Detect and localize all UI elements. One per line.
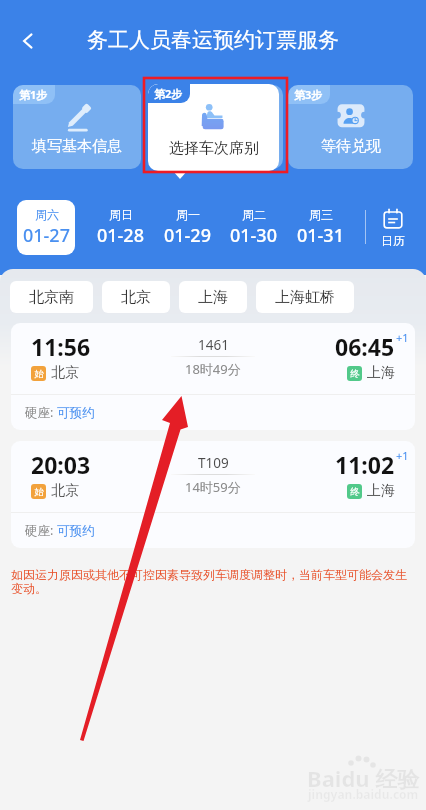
staticText: 始 bbox=[34, 368, 44, 380]
button[interactable]: 填写基本信息 bbox=[13, 85, 141, 169]
staticText: 硬座: bbox=[25, 522, 57, 539]
staticText: 北京南 bbox=[29, 288, 74, 307]
staticText: 上海 bbox=[367, 482, 395, 500]
staticText: 始 bbox=[34, 486, 44, 498]
staticText: 硬座: bbox=[25, 404, 57, 421]
staticText: 选择车次席别 bbox=[169, 139, 259, 158]
staticText: Baidu 经验 bbox=[307, 763, 420, 793]
button[interactable]: 11:56 bbox=[11, 323, 415, 430]
staticText: 等待兑现 bbox=[321, 137, 381, 156]
staticText: 终 bbox=[350, 368, 360, 380]
staticText: 务工人员春运预约订票服务 bbox=[87, 27, 339, 53]
staticText: 11:56 bbox=[31, 331, 91, 362]
staticText: 终 bbox=[350, 486, 360, 498]
staticText: +1 bbox=[396, 330, 409, 345]
staticText: 20:03 bbox=[31, 449, 91, 480]
staticText: 可预约 bbox=[57, 405, 95, 421]
staticText: 14时59分 bbox=[185, 478, 241, 496]
staticText: 周二 bbox=[242, 207, 266, 222]
staticText: 第3步 bbox=[294, 87, 323, 102]
staticText: 周一 bbox=[176, 207, 200, 222]
button[interactable]: 上海虹桥 bbox=[256, 281, 354, 313]
staticText: T109 bbox=[198, 454, 229, 472]
staticText: 可预约 bbox=[57, 523, 95, 539]
staticText: 01-30 bbox=[230, 223, 277, 248]
staticText: 11:02 bbox=[335, 449, 395, 480]
staticText: 北京 bbox=[121, 288, 151, 307]
staticText: 1461 bbox=[198, 336, 229, 354]
button[interactable]: 周三 bbox=[287, 200, 354, 255]
button[interactable]: 北京南 bbox=[10, 281, 93, 313]
staticText: 北京 bbox=[51, 482, 79, 500]
button[interactable]: 周日 bbox=[87, 200, 154, 255]
button[interactable]: 北京 bbox=[102, 281, 170, 313]
staticText: 如因运力原因或其他不可控因素导致列车调度调整时，当前车型可能会发生变动。 bbox=[11, 567, 418, 596]
button[interactable]: 选择车次席别 bbox=[148, 84, 279, 171]
button[interactable]: 20:03 bbox=[11, 441, 415, 548]
button[interactable]: 上海 bbox=[179, 281, 247, 313]
button[interactable]: 日历 bbox=[370, 208, 416, 248]
button[interactable]: 周一 bbox=[154, 200, 221, 255]
staticText: +1 bbox=[396, 448, 409, 463]
staticText: 06:45 bbox=[335, 331, 395, 362]
staticText: jingyan.baidu.com bbox=[308, 786, 419, 802]
staticText: 周三 bbox=[309, 207, 333, 222]
staticText: 18时49分 bbox=[185, 360, 241, 378]
staticText: 上海 bbox=[367, 364, 395, 382]
button[interactable]: 等待兑现 bbox=[288, 85, 413, 169]
staticText: 第1步 bbox=[19, 87, 48, 102]
button[interactable]: 返回 bbox=[8, 21, 48, 61]
staticText: 第2步 bbox=[154, 86, 183, 101]
staticText: 北京 bbox=[51, 364, 79, 382]
button[interactable]: 周六 bbox=[17, 200, 75, 255]
staticText: 上海 bbox=[198, 288, 228, 307]
staticText: 日历 bbox=[381, 233, 405, 248]
staticText: 填写基本信息 bbox=[32, 137, 122, 156]
staticText: 01-31 bbox=[297, 223, 344, 248]
staticText: 01-29 bbox=[164, 223, 211, 248]
staticText: 周六 bbox=[35, 207, 59, 222]
button[interactable]: 周二 bbox=[220, 200, 287, 255]
staticText: 周日 bbox=[109, 207, 133, 222]
staticText: 上海虹桥 bbox=[275, 288, 335, 307]
staticText: 01-28 bbox=[97, 223, 144, 248]
staticText: 01-27 bbox=[23, 223, 70, 248]
